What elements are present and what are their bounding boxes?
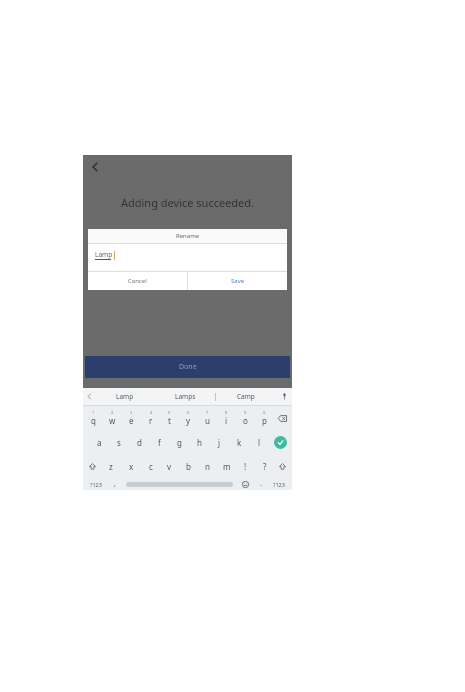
staticText: e [129,415,134,426]
staticText: 4 [150,410,153,415]
button[interactable]: v [160,454,179,478]
button[interactable]: 9 [236,406,255,430]
button[interactable]: 6 [179,406,198,430]
staticText: Lamp [95,250,113,259]
button[interactable]: s [109,430,129,454]
staticText: , [114,479,116,489]
staticText: y [186,415,191,426]
staticText: a [97,437,102,448]
staticText: 1 [92,410,95,415]
button[interactable]: Lamp [88,244,287,271]
button[interactable]: . [254,478,268,490]
button[interactable]: n [198,454,217,478]
staticText: ? [263,461,267,472]
staticText: Lamps [175,392,196,401]
staticText: t [168,415,171,426]
button[interactable]: 4 [141,406,160,430]
button[interactable]: Space [123,478,236,490]
button[interactable]: Enter [269,430,291,454]
staticText: 7 [206,410,209,415]
button[interactable]: 8 [217,406,236,430]
staticText: z [109,461,113,472]
staticText: q [91,415,96,426]
button[interactable]: ! [236,454,255,478]
button[interactable]: 2 [103,406,122,430]
button[interactable]: 1 [84,406,103,430]
staticText: . [260,479,262,489]
staticText: u [205,415,210,426]
staticText: x [129,461,134,472]
staticText: 3 [130,410,133,415]
staticText: ! [244,461,247,472]
button[interactable]: Cancel [88,272,187,290]
staticText: Lamp [116,392,134,401]
staticText: j [218,437,221,448]
button[interactable]: x [121,454,141,478]
staticText: Adding device succeeded. [83,195,292,210]
button[interactable]: ?123 [85,478,107,490]
staticText: r [149,415,153,426]
staticText: w [109,415,116,426]
staticText: Save [231,277,245,285]
button[interactable]: 3 [122,406,141,430]
button[interactable]: l [249,430,269,454]
button[interactable]: m [217,454,236,478]
staticText: 2 [111,410,114,415]
button[interactable]: j [209,430,229,454]
staticText: p [262,415,267,426]
staticText: 8 [225,410,228,415]
staticText: g [177,437,182,448]
staticText: f [158,437,161,448]
button[interactable]: Backspace [274,406,291,430]
staticText: s [117,437,121,448]
button[interactable]: 7 [198,406,217,430]
staticText: ?123 [273,481,285,488]
button[interactable]: Save [188,272,287,290]
staticText: Cancel [128,277,147,285]
staticText: c [149,461,153,472]
button[interactable]: More suggestions [83,388,95,405]
button[interactable]: Emoji [236,478,254,490]
staticText: d [137,437,142,448]
button[interactable]: Back [86,158,104,176]
button[interactable]: Camp [216,388,276,405]
staticText: m [223,461,231,472]
button[interactable]: d [129,430,149,454]
staticText: l [258,437,261,448]
button[interactable]: f [149,430,169,454]
button[interactable]: Shift [84,454,101,478]
button[interactable]: b [179,454,198,478]
button[interactable]: z [101,454,121,478]
button[interactable]: ?123 [268,478,290,490]
staticText: 5 [168,410,171,415]
staticText: 6 [187,410,190,415]
staticText: n [205,461,210,472]
button[interactable]: k [229,430,249,454]
button[interactable]: h [189,430,209,454]
staticText: Done [179,362,197,372]
staticText: v [167,461,172,472]
button[interactable]: Lamps [155,388,215,405]
staticText: k [237,437,242,448]
staticText: Camp [237,392,255,401]
button[interactable]: Voice input [276,388,292,405]
button[interactable]: 0 [255,406,274,430]
staticText: o [243,415,248,426]
button[interactable]: Lamp [95,388,155,405]
button[interactable]: ? [255,454,274,478]
staticText: Rename [176,232,200,240]
staticText: 9 [244,410,247,415]
staticText: ?123 [90,481,102,488]
button[interactable]: Shift [274,454,291,478]
staticText: 0 [263,410,266,415]
staticText: h [197,437,202,448]
staticText: i [225,415,228,426]
staticText: b [186,461,191,472]
button[interactable]: , [107,478,123,490]
button[interactable]: 5 [160,406,179,430]
button[interactable]: a [90,430,109,454]
button[interactable]: c [141,454,160,478]
button[interactable]: g [169,430,189,454]
button[interactable]: Done [85,356,290,378]
